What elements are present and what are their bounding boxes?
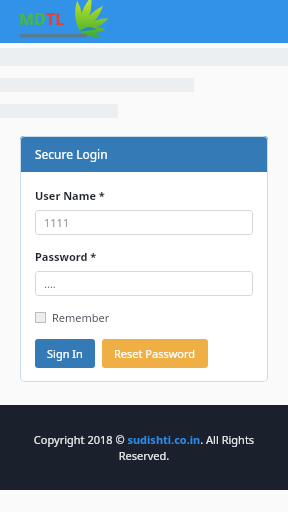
button[interactable]: Remember [35, 308, 110, 327]
staticText: Copyright 2018 © sudishti.co.in. All Rig… [26, 432, 262, 464]
staticText: 1111 [44, 215, 70, 230]
staticText: MD [19, 8, 46, 30]
staticText: .... [44, 276, 56, 291]
staticText: Remember [52, 310, 110, 325]
staticText: Reset Password [114, 346, 196, 361]
staticText: User Name * [35, 188, 105, 203]
staticText: Password * [35, 249, 97, 264]
staticText: TL [46, 8, 65, 30]
other: MDTL logo [18, 2, 104, 42]
button[interactable]: .... [35, 271, 253, 296]
staticText: Secure Login [35, 146, 108, 162]
staticText: Sign In [47, 346, 83, 361]
button[interactable]: Reset Password [102, 339, 208, 368]
button[interactable]: Sign In [35, 339, 95, 368]
button[interactable]: 1111 [35, 210, 253, 235]
